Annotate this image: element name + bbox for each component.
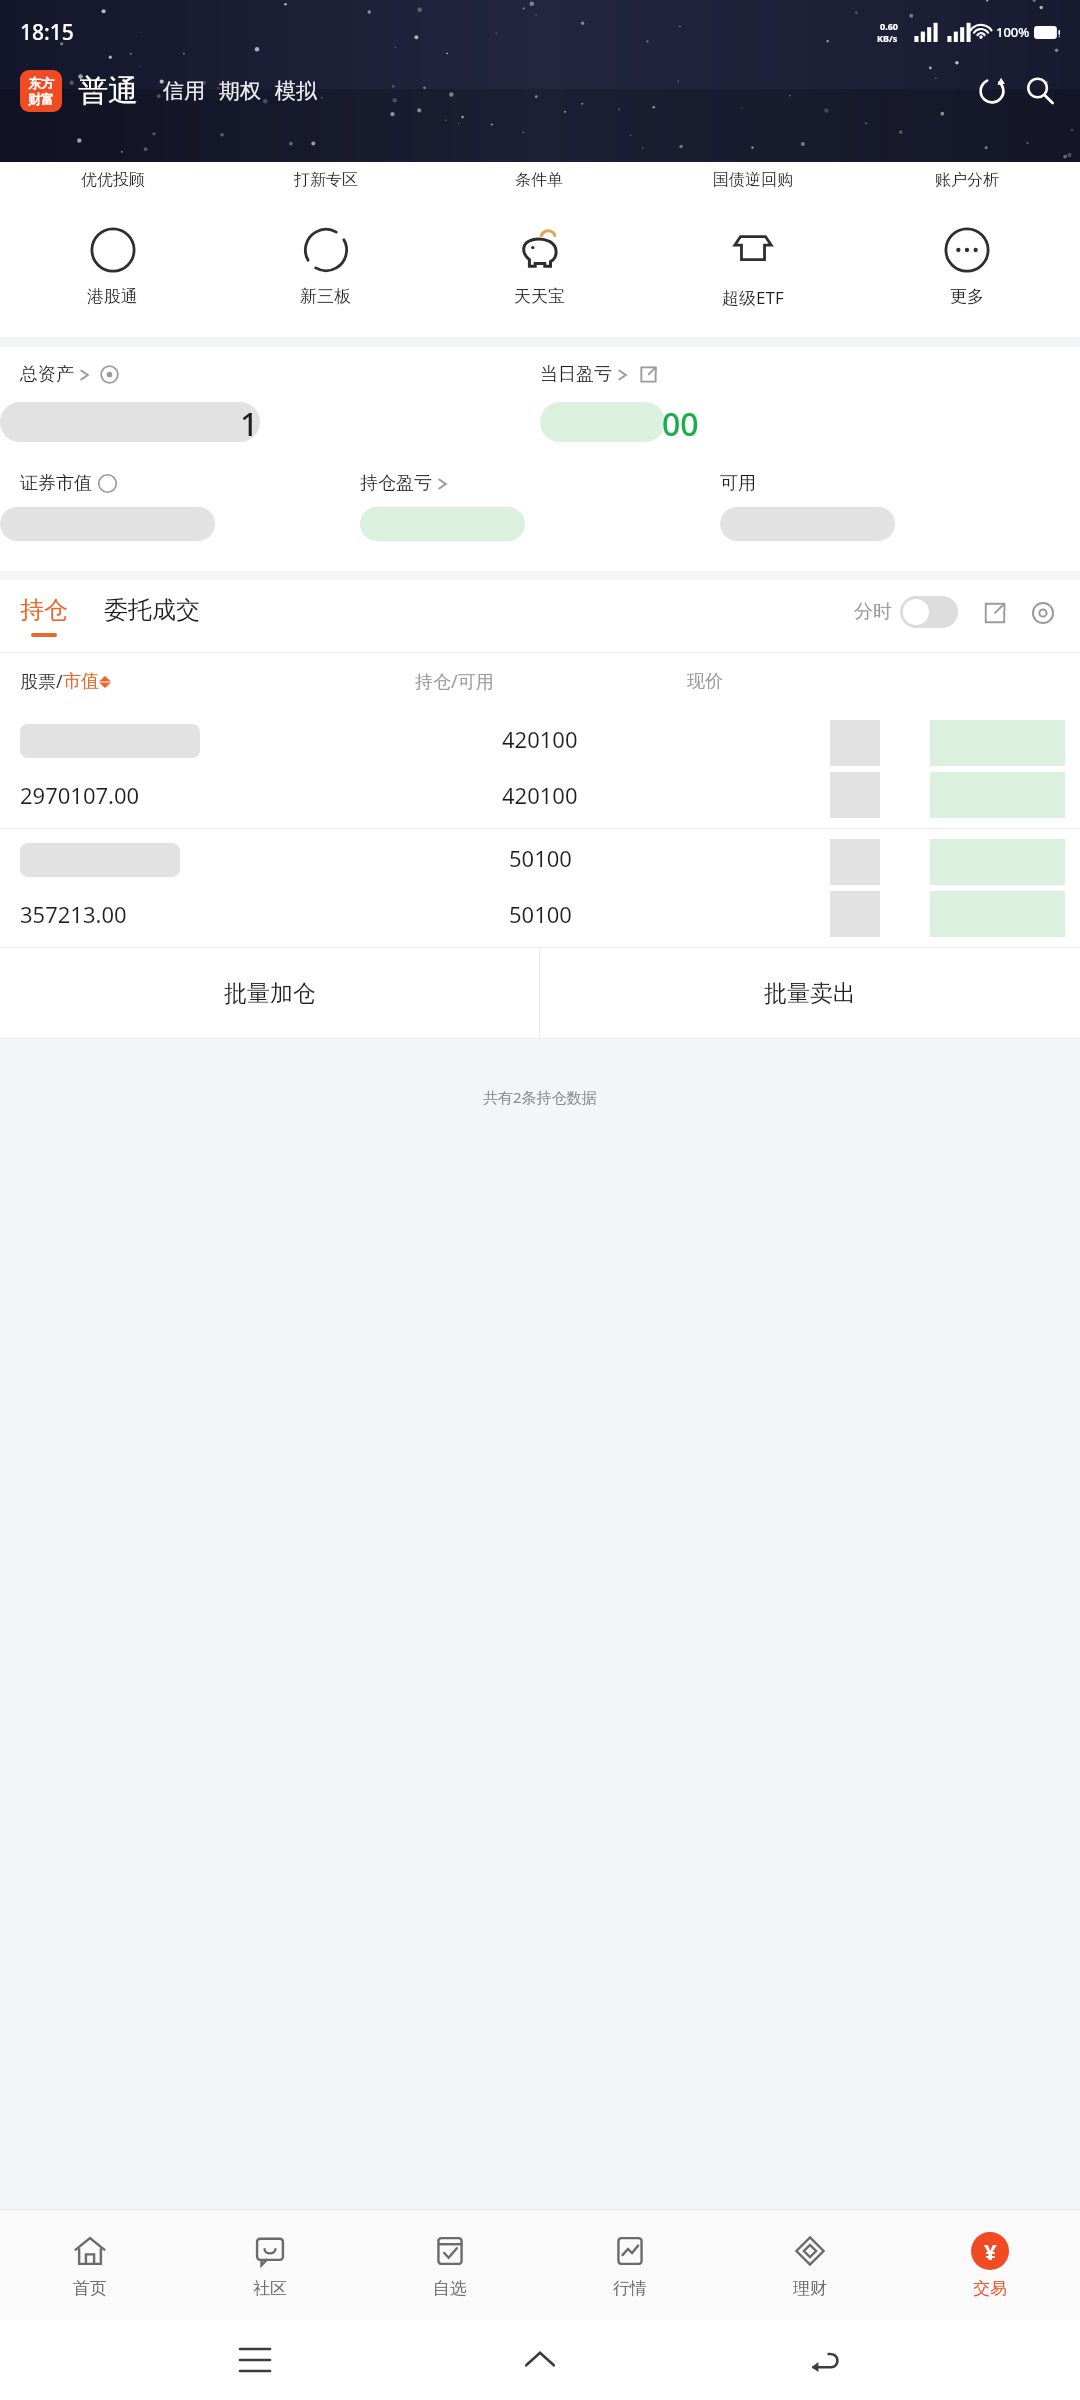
button[interactable]: 持仓 — [20, 595, 68, 637]
button[interactable]: 首页 — [0, 2232, 180, 2299]
staticText: 股票/ — [20, 669, 63, 694]
button[interactable]: 打新专区 — [219, 164, 432, 196]
button[interactable]: 持仓盈亏 — [360, 472, 448, 495]
button[interactable]: 国债逆回购 — [646, 164, 860, 196]
staticText: 2970107.00 — [20, 780, 140, 810]
staticText: 市值 — [63, 670, 99, 693]
staticText: 证券市值 — [20, 472, 92, 495]
staticText: 分时 — [854, 600, 892, 624]
button[interactable]: 委托成交 — [104, 595, 200, 637]
staticText: 期权 — [219, 78, 261, 104]
staticText: 委托成交 — [104, 595, 200, 625]
staticText: ¥ — [984, 2236, 997, 2266]
staticText: 东方 — [28, 75, 54, 91]
button[interactable]: 新三板 — [219, 222, 432, 309]
staticText: 总资产 — [20, 363, 74, 386]
staticText: 批量加仓 — [224, 979, 316, 1008]
staticText: 信用 — [163, 78, 205, 104]
staticText: 共有2条持仓数据 — [483, 1087, 597, 1107]
button[interactable]: Expand — [978, 599, 1012, 633]
button[interactable]: 股票/ — [20, 669, 323, 694]
button[interactable]: 总资产 — [20, 363, 119, 386]
button[interactable]: Settings — [1026, 599, 1060, 633]
button[interactable]: 期权 — [212, 74, 268, 108]
button[interactable]: 证券市值 — [20, 472, 117, 495]
button[interactable]: 账户分析 — [860, 164, 1074, 196]
staticText: 首页 — [73, 2278, 107, 2299]
button[interactable]: Home — [510, 2330, 570, 2390]
button[interactable]: 东方 — [20, 70, 62, 112]
staticText: 账户分析 — [935, 170, 999, 190]
staticText: 00 — [662, 402, 699, 446]
staticText: 理财 — [793, 2278, 827, 2299]
button[interactable]: Recents — [225, 2330, 285, 2390]
staticText: 国债逆回购 — [713, 170, 793, 190]
button[interactable]: 港股通 — [6, 222, 219, 309]
staticText: 持仓 — [20, 595, 68, 625]
staticText: 357213.00 — [20, 899, 127, 929]
button[interactable]: 模拟 — [268, 74, 324, 108]
staticText: 模拟 — [275, 78, 317, 104]
staticText: 普通 — [78, 72, 138, 110]
staticText: 交易 — [973, 2278, 1007, 2299]
button[interactable]: 更多 — [860, 222, 1074, 309]
button[interactable]: 批量卖出 — [540, 948, 1080, 1038]
button[interactable]: 社区 — [180, 2232, 360, 2299]
staticText: 超级ETF — [722, 286, 784, 309]
staticText: 条件单 — [515, 170, 563, 190]
staticText: 优优投顾 — [81, 170, 145, 190]
staticText: 可用 — [720, 472, 756, 495]
staticText: 0.60 — [880, 20, 898, 32]
staticText: 100% — [996, 23, 1030, 41]
button[interactable]: 行情 — [540, 2232, 720, 2299]
button[interactable]: 当日盈亏 — [540, 363, 657, 386]
staticText: 18:15 — [20, 18, 74, 47]
staticText: 更多 — [950, 286, 984, 307]
staticText: KB/s — [877, 32, 898, 44]
button[interactable]: 天天宝 — [432, 222, 646, 309]
staticText: 行情 — [613, 2278, 647, 2299]
staticText: 天天宝 — [514, 286, 565, 307]
staticText: 当日盈亏 — [540, 363, 612, 386]
button[interactable]: Search — [1020, 71, 1060, 111]
staticText: 财富 — [28, 91, 54, 107]
staticText: 港股通 — [87, 286, 138, 307]
button[interactable]: 理财 — [720, 2232, 900, 2299]
staticText: 自选 — [433, 2278, 467, 2299]
button[interactable]: 普通 — [76, 70, 140, 112]
staticText: 420100 — [502, 780, 578, 810]
button[interactable]: 超级ETF — [646, 222, 860, 311]
button[interactable]: 自选 — [360, 2232, 540, 2299]
staticText: 打新专区 — [294, 170, 358, 190]
button[interactable]: 优优投顾 — [6, 164, 219, 196]
button[interactable]: 50100 — [0, 829, 1080, 947]
staticText: 420100 — [502, 724, 578, 754]
staticText: 持仓/可用 — [415, 669, 494, 694]
button[interactable]: 批量加仓 — [0, 948, 539, 1038]
button[interactable]: Back — [795, 2330, 855, 2390]
staticText: 50100 — [509, 843, 572, 873]
staticText: 社区 — [253, 2278, 287, 2299]
button[interactable]: 分时 — [854, 596, 958, 636]
button[interactable]: Refresh — [972, 71, 1012, 111]
staticText: 持仓盈亏 — [360, 472, 432, 495]
button[interactable]: 信用 — [156, 74, 212, 108]
button[interactable]: 条件单 — [432, 164, 646, 196]
button[interactable]: ¥ — [900, 2232, 1080, 2299]
staticText: 50100 — [509, 899, 572, 929]
staticText: 现价 — [687, 670, 723, 693]
staticText: 1 — [240, 402, 259, 446]
staticText: 批量卖出 — [764, 979, 856, 1008]
staticText: 新三板 — [300, 286, 351, 307]
button[interactable]: 420100 — [0, 710, 1080, 828]
